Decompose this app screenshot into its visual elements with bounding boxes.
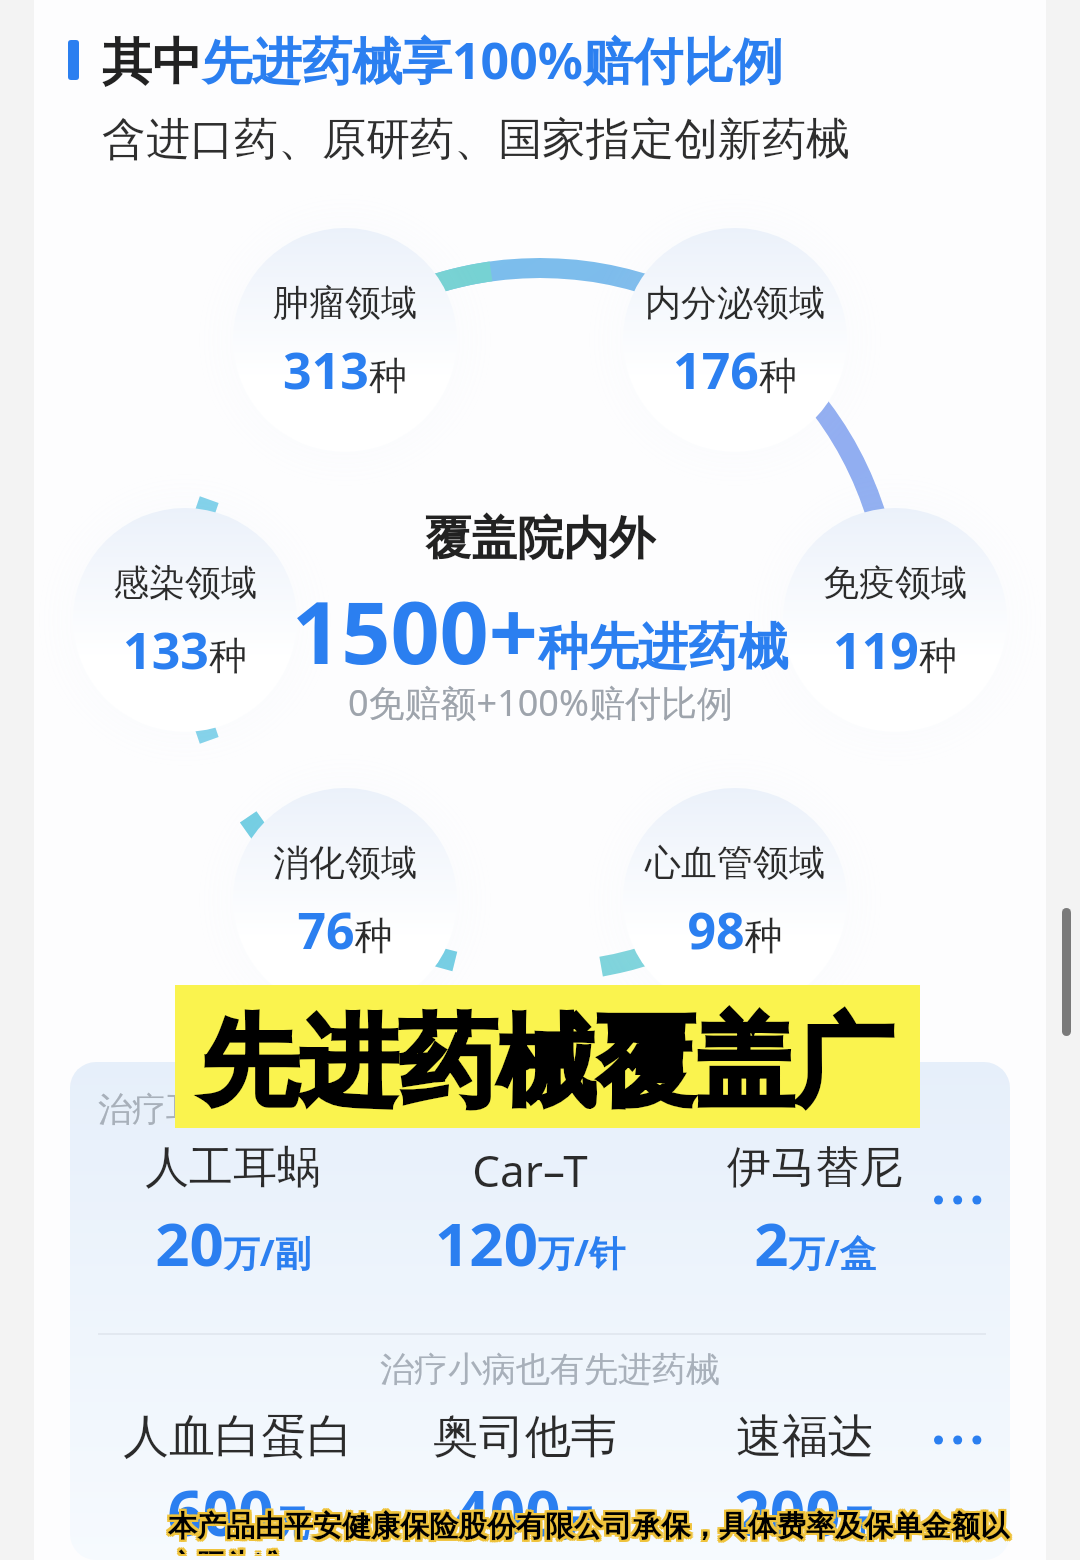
staticText: 20万/副 [155,1202,311,1284]
staticText: 治疗耳聋等重疾的先进药械 [98,1088,506,1131]
button[interactable] [70,1062,1010,1560]
staticText: 先进药械覆盖广 [200,1002,893,1125]
button[interactable]: 更多 [925,1425,985,1455]
staticText: 119种 [833,616,957,684]
staticText: 人工耳蜗 [145,1140,321,1195]
staticText: 313种 [283,336,407,404]
button[interactable]: 速福达 [680,1408,930,1558]
staticText: 本产品由平安健康保险股份有限公司承保，具体费率及保单金额以实际为准。 [168,1508,1018,1554]
staticText: 本产品由平安健康保险股份有限公司承保，具体费率及保单金额以实际为准。 [166,1508,1016,1554]
button[interactable]: 内分泌领域 [623,228,847,452]
staticText: 本产品由平安健康保险股份有限公司承保，具体费率及保单金额以实际为准。 [170,1506,1020,1552]
staticText: 内分泌领域 [645,280,825,325]
staticText: 2万/盒 [754,1202,876,1284]
button[interactable]: 感染领域 [73,508,297,732]
button[interactable]: 心血管领域 [623,788,847,1012]
staticText: 本产品由平安健康保险股份有限公司承保，具体费率及保单金额以实际为准。 [168,1506,1018,1552]
staticText: 76种 [297,896,393,964]
staticText: 本产品由平安健康保险股份有限公司承保，具体费率及保单金额以实际为准。 [166,1510,1016,1556]
staticText: Car–T [472,1140,588,1200]
staticText: 奥司他韦 [433,1408,617,1466]
staticText: 600元 [167,1470,310,1554]
button[interactable]: 人血白蛋白 [98,1408,378,1558]
staticText: 120万/针 [435,1202,625,1284]
staticText: 含进口药、原研药、国家指定创新药械 [102,112,850,167]
staticText: 免疫领域 [823,560,967,605]
staticText: 133种 [123,616,247,684]
staticText: 速福达 [736,1408,874,1466]
staticText: 伊马替尼 [727,1140,903,1195]
button[interactable]: 奥司他韦 [400,1408,650,1558]
staticText: 心血管领域 [645,840,825,885]
staticText: 消化领域 [273,840,417,885]
staticText: 200元 [734,1470,877,1554]
staticText: 感染领域 [113,560,257,605]
button[interactable]: 人工耳蜗 [108,1140,358,1290]
staticText: 98种 [687,896,783,964]
button[interactable]: 消化领域 [233,788,457,1012]
button[interactable]: 伊马替尼 [690,1140,940,1290]
staticText: 覆盖院内外 [425,510,655,568]
staticText: 肿瘤领域 [273,280,417,325]
staticText: 其中先进药械享100%赔付比例 [102,26,783,94]
staticText: 本产品由平安健康保险股份有限公司承保，具体费率及保单金额以实际为准。 [170,1510,1020,1556]
button[interactable]: 更多 [925,1185,985,1215]
staticText: 0免赔额+100%赔付比例 [348,678,733,727]
button[interactable]: 免疫领域 [783,508,1007,732]
staticText: 治疗小病也有先进药械 [380,1348,720,1391]
staticText: 400元 [454,1470,597,1554]
staticText: 人血白蛋白 [123,1408,353,1466]
button[interactable]: 肿瘤领域 [233,228,457,452]
staticText: 本产品由平安健康保险股份有限公司承保，具体费率及保单金额以实际为准。 [166,1506,1016,1552]
staticText: 176种 [673,336,797,404]
button[interactable]: Car–T [405,1140,655,1290]
staticText: 本产品由平安健康保险股份有限公司承保，具体费率及保单金额以实际为准。 [170,1508,1020,1554]
staticText: 1500+种先进药械 [292,572,788,689]
staticText: 本产品由平安健康保险股份有限公司承保，具体费率及保单金额以实际为准。 [168,1510,1018,1556]
